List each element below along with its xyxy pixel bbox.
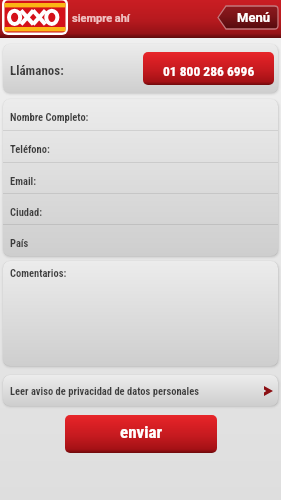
staticText: Comentarios: [10, 267, 67, 279]
button[interactable]: Email: [3, 163, 278, 194]
staticText: Ciudad: [10, 206, 43, 218]
button[interactable]: País [3, 225, 278, 256]
staticText: enviar [120, 422, 163, 442]
staticText: País [10, 237, 29, 249]
button[interactable]: Comentarios: [3, 261, 278, 366]
button[interactable]: Teléfono: [3, 131, 278, 163]
other: Abrir aviso de privacidad [264, 386, 273, 396]
staticText: Menú [237, 10, 270, 25]
staticText: siempre ahí [72, 12, 130, 25]
button[interactable]: Leer aviso de privacidad de datos person… [3, 375, 278, 406]
button[interactable]: Nombre Completo: [3, 99, 278, 131]
button[interactable]: OXXO [2, 0, 68, 35]
staticText: Llámanos: [10, 63, 64, 78]
staticText: Email: [10, 175, 37, 187]
staticText: Nombre Completo: [10, 111, 89, 123]
button[interactable]: Menú [217, 5, 279, 30]
staticText: Leer aviso de privacidad de datos person… [10, 385, 199, 397]
button[interactable]: enviar [65, 415, 217, 453]
staticText: 01 800 286 6996 [163, 63, 255, 79]
button[interactable]: Ciudad: [3, 194, 278, 225]
staticText: Teléfono: [10, 143, 50, 155]
button[interactable]: 01 800 286 6996 [143, 52, 274, 85]
